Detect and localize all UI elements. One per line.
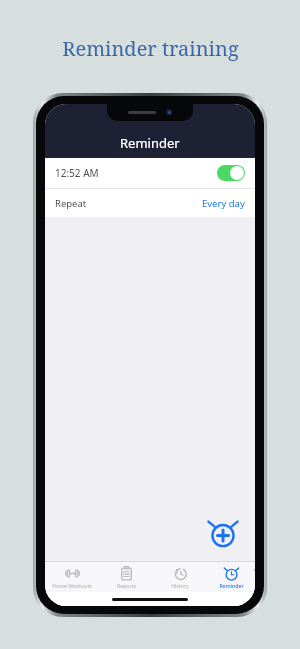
button[interactable]: History xyxy=(153,562,207,592)
staticText: Every day xyxy=(202,197,245,210)
staticText: Home Workouts xyxy=(52,582,92,589)
button[interactable]: Add reminder xyxy=(205,515,241,551)
button[interactable]: Repeat xyxy=(45,189,255,217)
staticText: 12:52 AM xyxy=(55,166,99,180)
button[interactable]: 12:52 AM xyxy=(45,158,255,188)
staticText: Reports xyxy=(117,582,136,589)
staticText: Repeat xyxy=(55,197,87,210)
staticText: Reminder xyxy=(219,582,244,589)
button[interactable]: Reminder enabled xyxy=(217,165,245,181)
button[interactable]: Reminder xyxy=(207,562,255,592)
staticText: Reminder xyxy=(120,134,180,152)
staticText: Reminder training xyxy=(62,35,239,62)
staticText: History xyxy=(171,582,189,589)
button[interactable]: Home Workouts xyxy=(45,562,99,592)
button[interactable]: Reports xyxy=(99,562,153,592)
